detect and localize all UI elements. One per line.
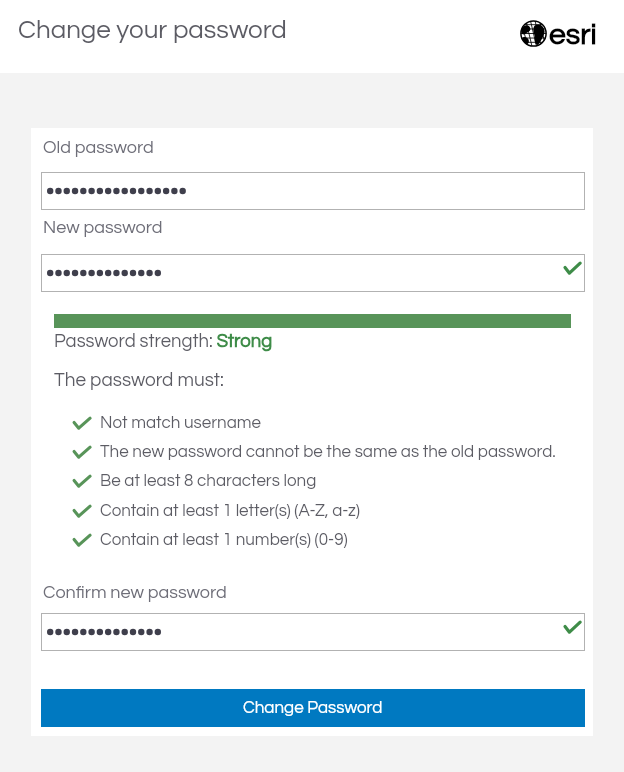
staticText: Contain at least 1 letter(s) (A-Z, a-z) bbox=[100, 502, 360, 520]
staticText: New password bbox=[43, 218, 163, 237]
staticText: The password must: bbox=[54, 370, 224, 390]
button[interactable]: New password bbox=[41, 254, 585, 292]
staticText: Be at least 8 characters long bbox=[100, 472, 317, 490]
button[interactable]: Change Password bbox=[41, 689, 585, 727]
staticText: esri bbox=[549, 19, 597, 50]
staticText: Change Password bbox=[243, 699, 383, 717]
staticText: Contain at least 1 number(s) (0-9) bbox=[100, 531, 348, 549]
button[interactable]: Confirm new password bbox=[41, 613, 585, 651]
staticText: Password strength: Strong bbox=[54, 332, 273, 351]
staticText: The new password cannot be the same as t… bbox=[100, 443, 556, 461]
staticText: Old password bbox=[43, 138, 154, 157]
staticText: Not match username bbox=[100, 414, 262, 432]
button[interactable]: Old password bbox=[41, 172, 585, 210]
staticText: Change your password bbox=[18, 17, 287, 44]
button[interactable]: Esri home bbox=[520, 18, 597, 49]
staticText: Confirm new password bbox=[43, 583, 227, 602]
